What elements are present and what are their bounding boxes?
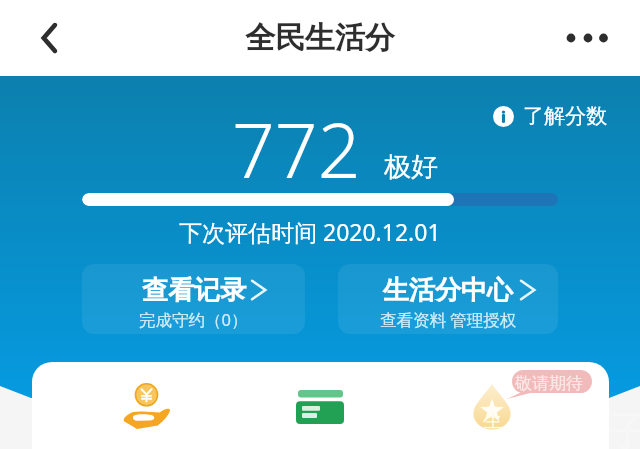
staticText: 极好 <box>384 150 438 184</box>
staticText: 敬请期待 <box>515 373 583 394</box>
staticText: 772 <box>232 98 361 200</box>
button[interactable]: 了解分数 <box>493 103 607 129</box>
button[interactable]: 生活分中心 <box>338 264 558 334</box>
staticText: 了解分数 <box>523 103 607 129</box>
staticText: 生 <box>483 409 502 433</box>
button[interactable]: 查看记录 <box>82 264 305 334</box>
staticText: 全民生活分 <box>245 19 395 57</box>
button[interactable]: 敬请期待 <box>504 370 592 402</box>
staticText: 完成守约（0） <box>139 308 248 331</box>
staticText: 查看资料 管理授权 <box>380 308 517 331</box>
staticText: 查看记录 <box>142 274 246 307</box>
button[interactable]: 信用卡 <box>295 390 345 424</box>
staticText: 下次评估时间 2020.12.01 <box>179 216 441 247</box>
button[interactable]: 借钱 <box>123 383 170 431</box>
button[interactable]: Back <box>28 16 72 60</box>
button[interactable]: More options <box>560 8 620 68</box>
staticText: 生活分中心 <box>383 274 513 307</box>
button[interactable]: 敬请期待 <box>473 383 511 430</box>
